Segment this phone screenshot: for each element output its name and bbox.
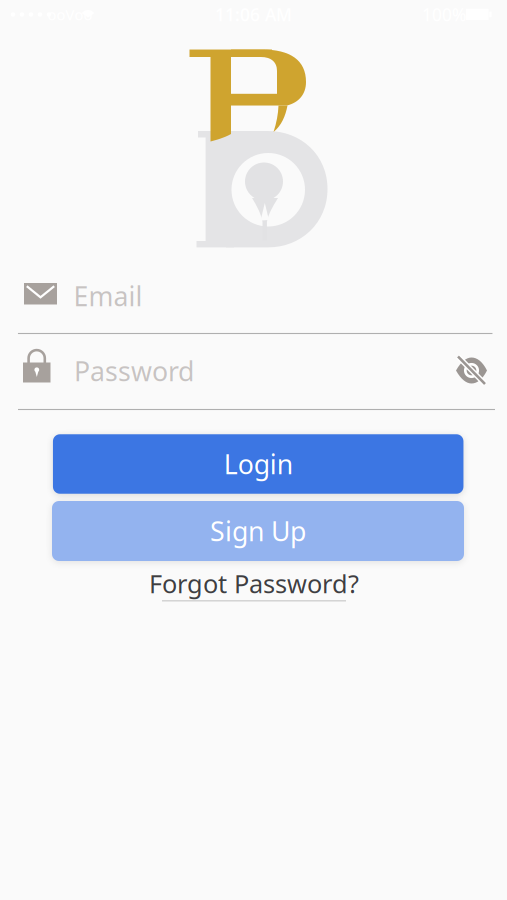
button[interactable]: Email bbox=[0, 275, 507, 337]
staticText: Login bbox=[224, 446, 293, 482]
button[interactable]: Forgot Password? bbox=[149, 567, 359, 601]
button[interactable]: Show password bbox=[448, 350, 494, 390]
button[interactable]: Login bbox=[53, 434, 463, 494]
button[interactable]: Password bbox=[0, 350, 507, 412]
button[interactable]: Sign Up bbox=[52, 501, 464, 561]
staticText: Forgot Password? bbox=[149, 567, 359, 600]
staticText: Sign Up bbox=[210, 513, 306, 549]
staticText: Email bbox=[73, 278, 142, 314]
staticText: Password bbox=[74, 353, 194, 389]
